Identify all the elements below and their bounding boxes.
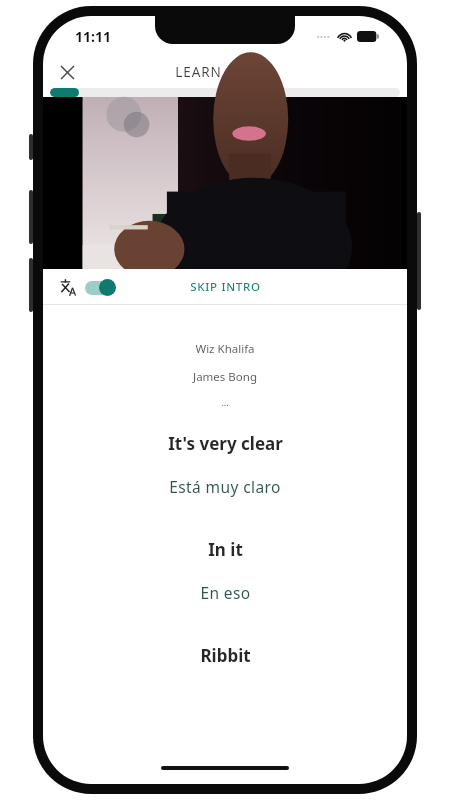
staticText: ... <box>221 396 229 408</box>
staticText: Está muy claro <box>169 476 281 497</box>
staticText: SKIP INTRO <box>190 279 261 295</box>
staticText: It's very clear <box>168 432 283 455</box>
staticText: 11:11 <box>75 27 111 46</box>
staticText: En eso <box>200 582 251 603</box>
button[interactable]: Close <box>51 56 83 88</box>
button[interactable]: SKIP INTRO <box>180 273 271 301</box>
button[interactable]: Toggle translation <box>55 275 119 300</box>
staticText: James Bong <box>193 369 257 385</box>
staticText: Wiz Khalifa <box>195 341 255 357</box>
staticText: In it <box>208 538 243 561</box>
staticText: LEARN LYRICS <box>175 63 275 81</box>
staticText: Ribbit <box>200 644 251 667</box>
